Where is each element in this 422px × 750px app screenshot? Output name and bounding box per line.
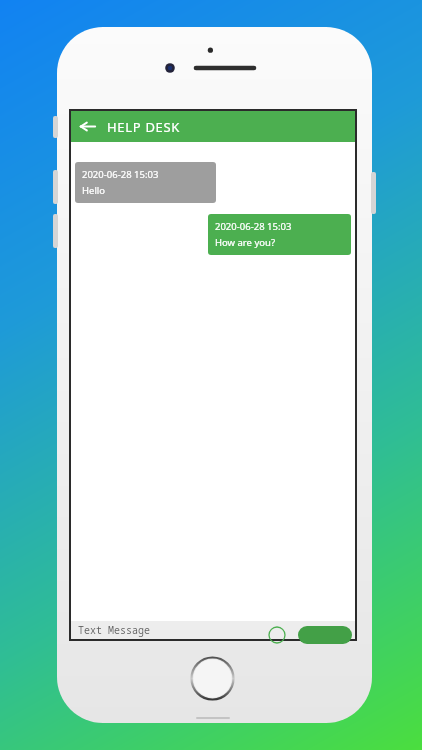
staticText: HELP DESK — [107, 118, 181, 136]
button[interactable]: Back — [71, 111, 103, 142]
button[interactable]: Send — [298, 626, 352, 644]
button[interactable]: 2020-06-28 15:03 — [75, 162, 216, 203]
staticText: 2020-06-28 15:03 — [82, 168, 159, 181]
staticText: Hello — [82, 184, 106, 197]
button[interactable]: Text Message — [78, 623, 150, 637]
staticText: 2020-06-28 15:03 — [215, 220, 292, 233]
button[interactable]: 2020-06-28 15:03 — [208, 214, 351, 255]
staticText: How are you? — [215, 236, 276, 249]
button[interactable]: Attach — [265, 626, 289, 644]
